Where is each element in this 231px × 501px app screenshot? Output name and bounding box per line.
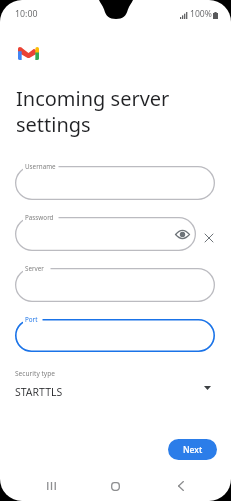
staticText: Security type bbox=[15, 369, 55, 378]
staticText: STARTTLS bbox=[15, 385, 63, 399]
staticText: Incoming server settings bbox=[16, 85, 196, 137]
button[interactable]: Back bbox=[166, 473, 195, 499]
staticText: Username bbox=[25, 162, 56, 171]
button[interactable]: Password bbox=[15, 217, 196, 251]
button[interactable]: Security type bbox=[0, 366, 231, 402]
staticText: Next bbox=[183, 444, 203, 456]
staticText: Password bbox=[25, 213, 54, 222]
button[interactable]: Clear password bbox=[198, 227, 220, 249]
button[interactable]: Port bbox=[15, 319, 215, 352]
button[interactable]: Home bbox=[101, 473, 130, 499]
button[interactable]: Next bbox=[168, 439, 217, 460]
staticText: Port bbox=[25, 315, 38, 324]
button[interactable]: Show password bbox=[173, 225, 191, 243]
staticText: Server bbox=[25, 264, 44, 273]
button[interactable]: Username bbox=[15, 166, 215, 200]
button[interactable]: Recent apps bbox=[37, 473, 66, 499]
staticText: 10:00 bbox=[15, 8, 38, 20]
button[interactable]: Server bbox=[15, 268, 215, 302]
staticText: 100% bbox=[190, 8, 212, 20]
